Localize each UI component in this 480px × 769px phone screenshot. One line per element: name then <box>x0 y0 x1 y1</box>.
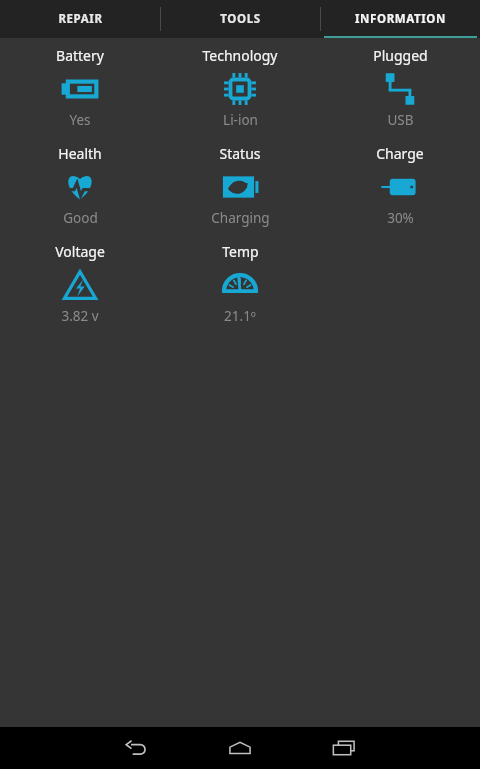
staticText: Charge <box>376 144 424 163</box>
button[interactable]: REPAIR <box>0 0 160 38</box>
staticText: Temp <box>222 242 259 261</box>
button[interactable]: Back <box>113 727 159 769</box>
staticText: Status <box>219 144 261 163</box>
button[interactable]: TOOLS <box>161 0 320 38</box>
button[interactable]: INFORMATION <box>321 0 480 38</box>
staticText: Battery <box>56 46 104 65</box>
staticText: INFORMATION <box>355 11 446 27</box>
staticText: Voltage <box>55 242 105 261</box>
staticText: Technology <box>202 46 278 65</box>
button[interactable]: Temp <box>160 240 320 338</box>
staticText: TOOLS <box>220 11 261 27</box>
button[interactable]: Health <box>0 142 160 240</box>
button[interactable]: Recents <box>321 727 367 769</box>
staticText: Good <box>63 209 98 227</box>
staticText: 21.1º <box>224 307 256 325</box>
button[interactable]: Battery <box>0 44 160 142</box>
staticText: Charging <box>211 209 270 227</box>
staticText: REPAIR <box>58 11 103 27</box>
staticText: Yes <box>69 111 91 129</box>
staticText: USB <box>387 111 414 129</box>
button[interactable]: Voltage <box>0 240 160 338</box>
button[interactable]: Technology <box>160 44 320 142</box>
staticText: 3.82 v <box>61 307 99 325</box>
staticText: Li-ion <box>223 111 258 129</box>
staticText: Plugged <box>373 46 428 65</box>
button[interactable]: Plugged <box>320 44 480 142</box>
button[interactable]: Status <box>160 142 320 240</box>
staticText: Health <box>58 144 102 163</box>
button[interactable]: Home <box>217 727 263 769</box>
button[interactable]: Charge <box>320 142 480 240</box>
staticText: 30% <box>387 209 414 227</box>
